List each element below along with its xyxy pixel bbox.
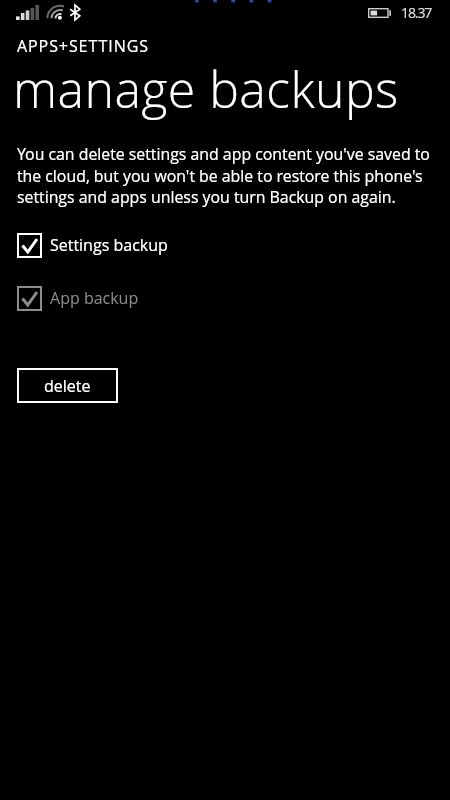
staticText: Settings backup: [50, 234, 168, 256]
button[interactable]: App backup: [0, 283, 450, 313]
button[interactable]: Settings backup: [0, 230, 450, 260]
staticText: You can delete settings and app content …: [17, 143, 437, 207]
other: Wi-Fi: [45, 3, 65, 20]
staticText: delete: [44, 375, 91, 397]
other: Battery: [368, 8, 391, 18]
staticText: manage backups: [13, 55, 399, 123]
other: Bluetooth: [70, 5, 80, 20]
staticText: APPS+SETTINGS: [17, 35, 149, 57]
other: Cellular signal: [16, 5, 39, 20]
staticText: App backup: [50, 287, 139, 309]
button[interactable]: delete: [17, 368, 118, 403]
staticText: 18.37: [401, 3, 432, 22]
